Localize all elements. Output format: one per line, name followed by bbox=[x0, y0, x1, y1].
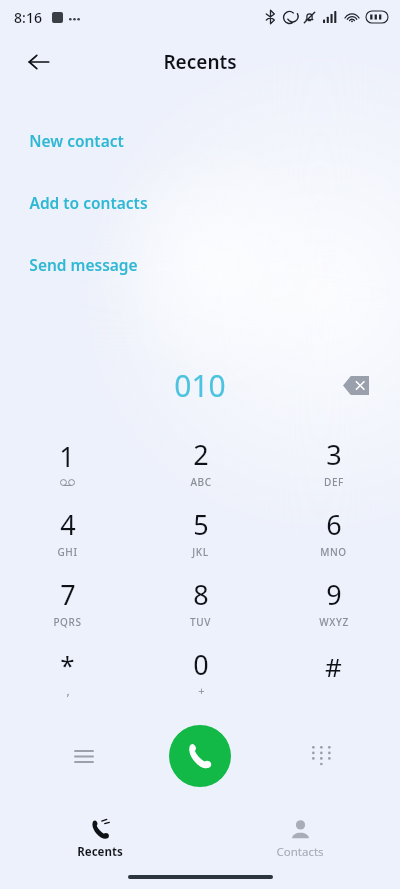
button[interactable]: 5 bbox=[134, 499, 267, 565]
staticText: DEF bbox=[324, 475, 344, 489]
staticText: * bbox=[60, 647, 75, 682]
button[interactable]: Back bbox=[16, 39, 62, 85]
button[interactable]: Add to contacts bbox=[0, 188, 400, 217]
staticText: 0 bbox=[193, 646, 209, 683]
button[interactable]: 8 bbox=[134, 569, 267, 635]
staticText: 010 bbox=[174, 365, 226, 406]
staticText: Recents bbox=[163, 49, 237, 75]
button[interactable]: Call bbox=[169, 725, 231, 787]
staticText: PQRS bbox=[53, 615, 82, 629]
staticText: , bbox=[66, 682, 70, 698]
button[interactable]: New contact bbox=[0, 126, 400, 155]
staticText: Send message bbox=[29, 254, 138, 275]
button[interactable]: 6 bbox=[267, 499, 400, 565]
button[interactable]: Backspace bbox=[336, 365, 376, 405]
staticText: 2 bbox=[193, 436, 209, 473]
button[interactable]: 2 bbox=[134, 429, 267, 495]
staticText: 4 bbox=[60, 506, 76, 543]
button[interactable]: Recents bbox=[0, 813, 200, 865]
staticText: 3 bbox=[326, 436, 342, 473]
staticText: 6 bbox=[326, 506, 342, 543]
staticText: Recents bbox=[77, 844, 123, 860]
button[interactable]: 1 bbox=[0, 429, 134, 495]
staticText: 8 bbox=[193, 576, 209, 613]
staticText: ABC bbox=[190, 475, 212, 489]
staticText: MNO bbox=[320, 545, 347, 559]
staticText: Add to contacts bbox=[29, 192, 148, 213]
button[interactable]: Contacts bbox=[200, 813, 400, 865]
staticText: TUV bbox=[190, 615, 211, 629]
staticText: WXYZ bbox=[319, 615, 349, 629]
staticText: 9 bbox=[326, 576, 342, 613]
staticText: 7 bbox=[60, 576, 76, 613]
button[interactable]: Send message bbox=[0, 250, 400, 279]
button[interactable]: * bbox=[0, 639, 134, 705]
button[interactable]: 4 bbox=[0, 499, 134, 565]
button[interactable]: Menu bbox=[62, 734, 106, 778]
button[interactable]: # bbox=[267, 639, 400, 705]
staticText: JKL bbox=[192, 545, 209, 559]
button[interactable]: Dialpad bbox=[298, 734, 342, 778]
staticText: GHI bbox=[57, 545, 78, 559]
button[interactable]: 0 bbox=[134, 639, 267, 705]
button[interactable]: 3 bbox=[267, 429, 400, 495]
staticText: Contacts bbox=[276, 844, 324, 860]
button[interactable]: 7 bbox=[0, 569, 134, 635]
staticText: 5 bbox=[193, 506, 209, 543]
staticText: + bbox=[198, 683, 205, 698]
staticText: New contact bbox=[29, 130, 124, 151]
staticText: 1 bbox=[59, 438, 75, 475]
button[interactable]: 9 bbox=[267, 569, 400, 635]
staticText: # bbox=[325, 649, 342, 684]
staticText: 8:16 bbox=[14, 8, 42, 27]
